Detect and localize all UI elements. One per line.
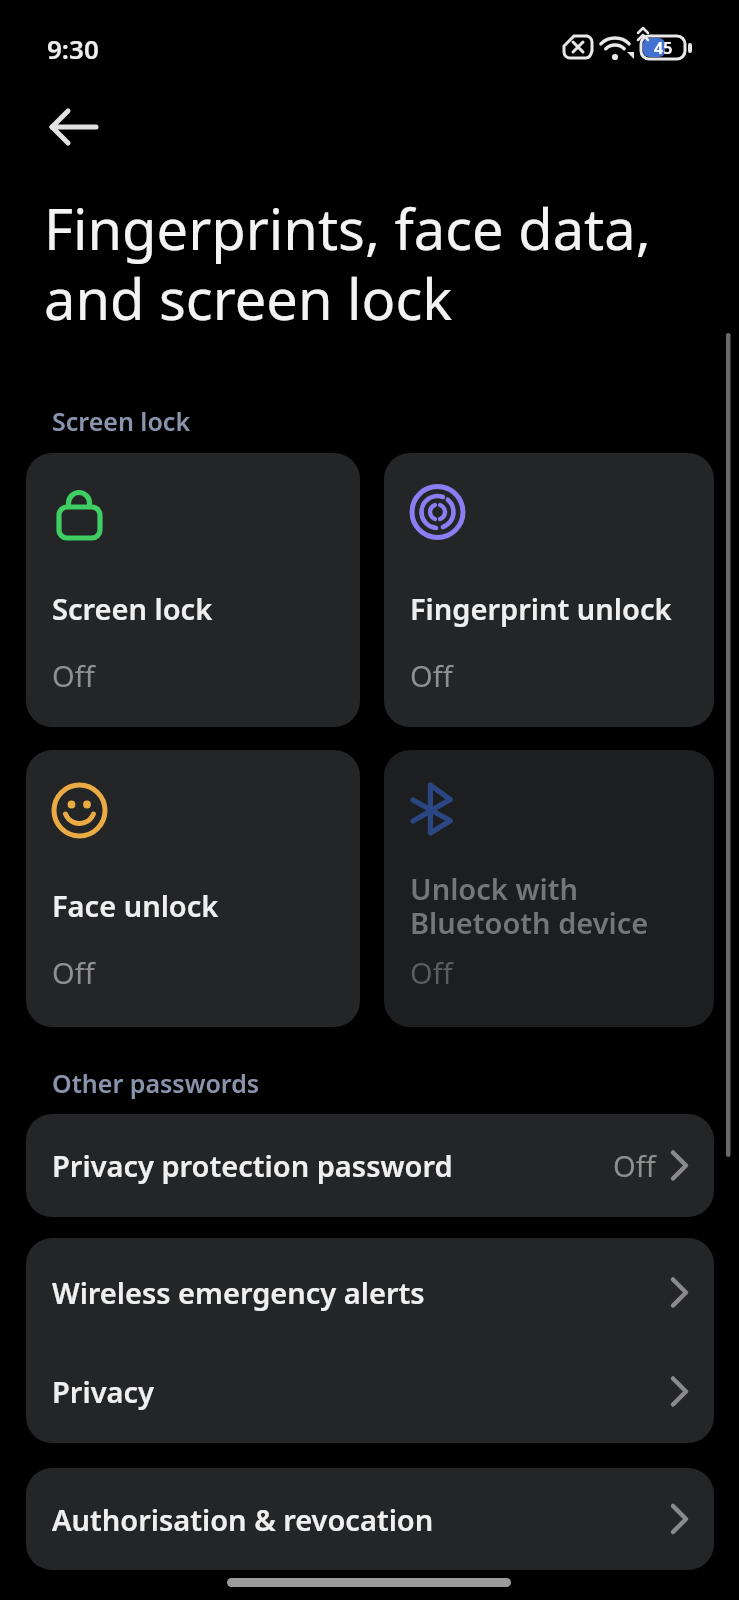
staticText: Unlock with Bluetooth device — [410, 869, 649, 942]
button[interactable] — [40, 102, 110, 154]
button[interactable]: Authorisation & revocation — [26, 1468, 714, 1570]
button[interactable]: Wireless emergency alerts — [26, 1241, 714, 1344]
button[interactable]: Screen lock — [26, 453, 360, 727]
button[interactable]: Face unlock — [26, 750, 360, 1027]
button[interactable]: Unlock with Bluetooth device — [384, 750, 714, 1027]
staticText: Off — [410, 656, 453, 695]
button[interactable]: Fingerprint unlock — [384, 453, 714, 727]
staticText: Other passwords — [52, 1066, 260, 1100]
staticText: Off — [52, 656, 95, 695]
staticText: Fingerprints, face data, and screen lock — [44, 190, 651, 336]
staticText: Screen lock — [52, 404, 191, 438]
staticText: 9:30 — [47, 31, 99, 66]
staticText: 45 — [654, 37, 673, 59]
staticText: Privacy protection password — [52, 1146, 453, 1185]
button[interactable]: Privacy protection password — [26, 1114, 714, 1217]
staticText: Wireless emergency alerts — [52, 1273, 425, 1312]
staticText: Privacy — [52, 1372, 154, 1411]
staticText: Fingerprint unlock — [410, 589, 672, 628]
staticText: Off — [613, 1146, 656, 1185]
staticText: Authorisation & revocation — [52, 1500, 434, 1539]
staticText: Screen lock — [52, 589, 213, 628]
button[interactable]: Privacy — [26, 1342, 714, 1441]
staticText: Off — [410, 953, 453, 992]
staticText: Face unlock — [52, 886, 219, 925]
staticText: Off — [52, 953, 95, 992]
